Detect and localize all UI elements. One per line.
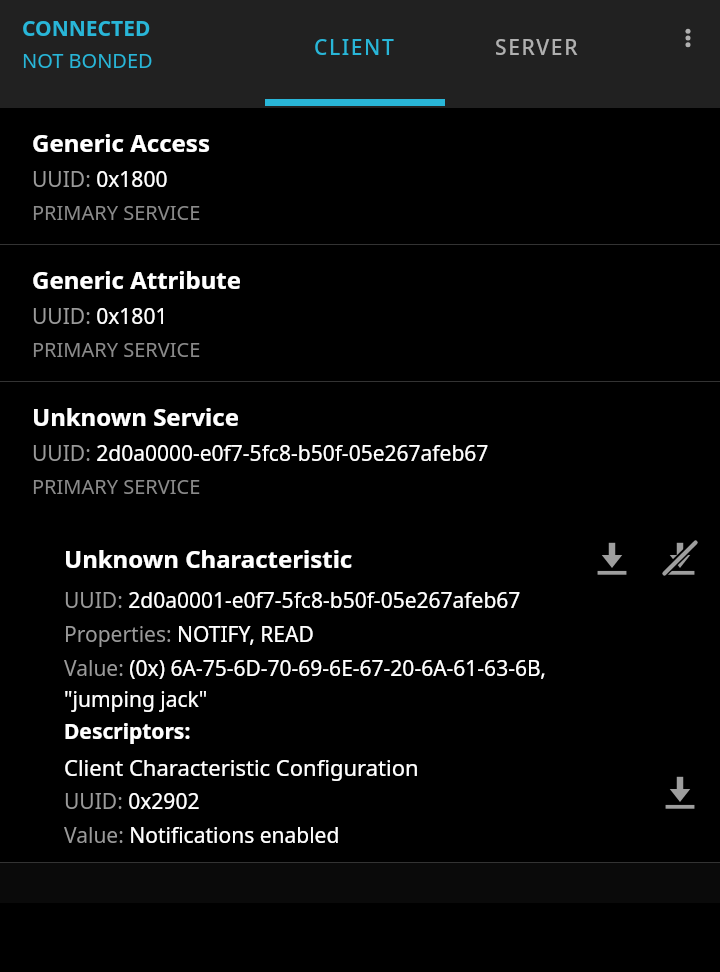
- staticText: Client Characteristic Configuration: [64, 752, 419, 782]
- staticText: Properties: NOTIFY, READ: [64, 620, 314, 649]
- button[interactable]: Stop notifications: [654, 532, 706, 584]
- staticText: UUID: 0x1800: [32, 165, 168, 194]
- button[interactable]: Generic Attribute: [0, 245, 720, 381]
- staticText: Value: (0x) 6A-75-6D-70-69-6E-67-20-6A-6…: [64, 654, 546, 713]
- staticText: UUID: 2d0a0001-e0f7-5fc8-b50f-05e267afeb…: [64, 586, 521, 615]
- button[interactable]: CONNECTED: [22, 14, 153, 74]
- staticText: CONNECTED: [22, 14, 151, 43]
- staticText: PRIMARY SERVICE: [32, 473, 201, 500]
- button[interactable]: SERVER: [455, 0, 620, 108]
- button[interactable]: Unknown Characteristic: [0, 518, 720, 862]
- button[interactable]: Read descriptor: [654, 766, 706, 818]
- staticText: Generic Access: [32, 126, 210, 159]
- button[interactable]: More options: [656, 0, 720, 88]
- staticText: PRIMARY SERVICE: [32, 199, 201, 226]
- staticText: UUID: 0x1801: [32, 302, 168, 331]
- staticText: Value: Notifications enabled: [64, 821, 340, 850]
- button[interactable]: Generic Access: [0, 108, 720, 244]
- staticText: Unknown Characteristic: [64, 542, 586, 575]
- staticText: UUID: 0x2902: [64, 787, 200, 816]
- button[interactable]: Client Characteristic Configuration: [64, 752, 706, 850]
- staticText: Descriptors:: [64, 717, 191, 746]
- staticText: NOT BONDED: [22, 47, 153, 74]
- staticText: Unknown Service: [32, 400, 239, 433]
- staticText: Generic Attribute: [32, 263, 242, 296]
- button[interactable]: Read: [586, 532, 638, 584]
- staticText: SERVER: [495, 33, 580, 62]
- button[interactable]: CLIENT: [265, 0, 445, 108]
- staticText: CLIENT: [314, 33, 396, 62]
- staticText: PRIMARY SERVICE: [32, 336, 201, 363]
- button[interactable]: Unknown Service: [0, 382, 720, 518]
- staticText: UUID: 2d0a0000-e0f7-5fc8-b50f-05e267afeb…: [32, 439, 489, 468]
